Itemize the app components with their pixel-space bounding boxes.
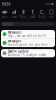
staticText: Messages <box>8 39 21 43</box>
staticText: Flash <box>30 15 36 18</box>
staticText: Auto <box>38 15 45 18</box>
button[interactable]: Blue <box>19 9 28 18</box>
button[interactable]: Data <box>9 9 19 18</box>
staticText: Blue <box>20 15 27 18</box>
button[interactable]: Batt <box>47 9 56 18</box>
staticText: Messages <box>8 31 21 34</box>
staticText: Batt <box>49 15 54 18</box>
staticText: 10:51 <box>1 1 10 7</box>
staticText: Wi-Fi <box>2 15 8 18</box>
button[interactable]: Brightness <box>0 20 56 27</box>
button[interactable]: Flash <box>28 9 37 18</box>
staticText: Hey — are we still on for 6? <box>8 34 46 38</box>
button[interactable]: Messages <box>1 39 55 47</box>
button[interactable]: Messages <box>1 30 55 38</box>
button[interactable]: Wi-Fi <box>0 9 9 18</box>
staticText: Sounds good, see you then <box>8 43 48 46</box>
staticText: Android 15 ready to install <box>8 53 46 57</box>
staticText: Data <box>11 15 16 18</box>
button[interactable]: System update <box>1 49 55 57</box>
staticText: System update <box>8 50 29 53</box>
button[interactable]: Auto <box>37 9 47 18</box>
